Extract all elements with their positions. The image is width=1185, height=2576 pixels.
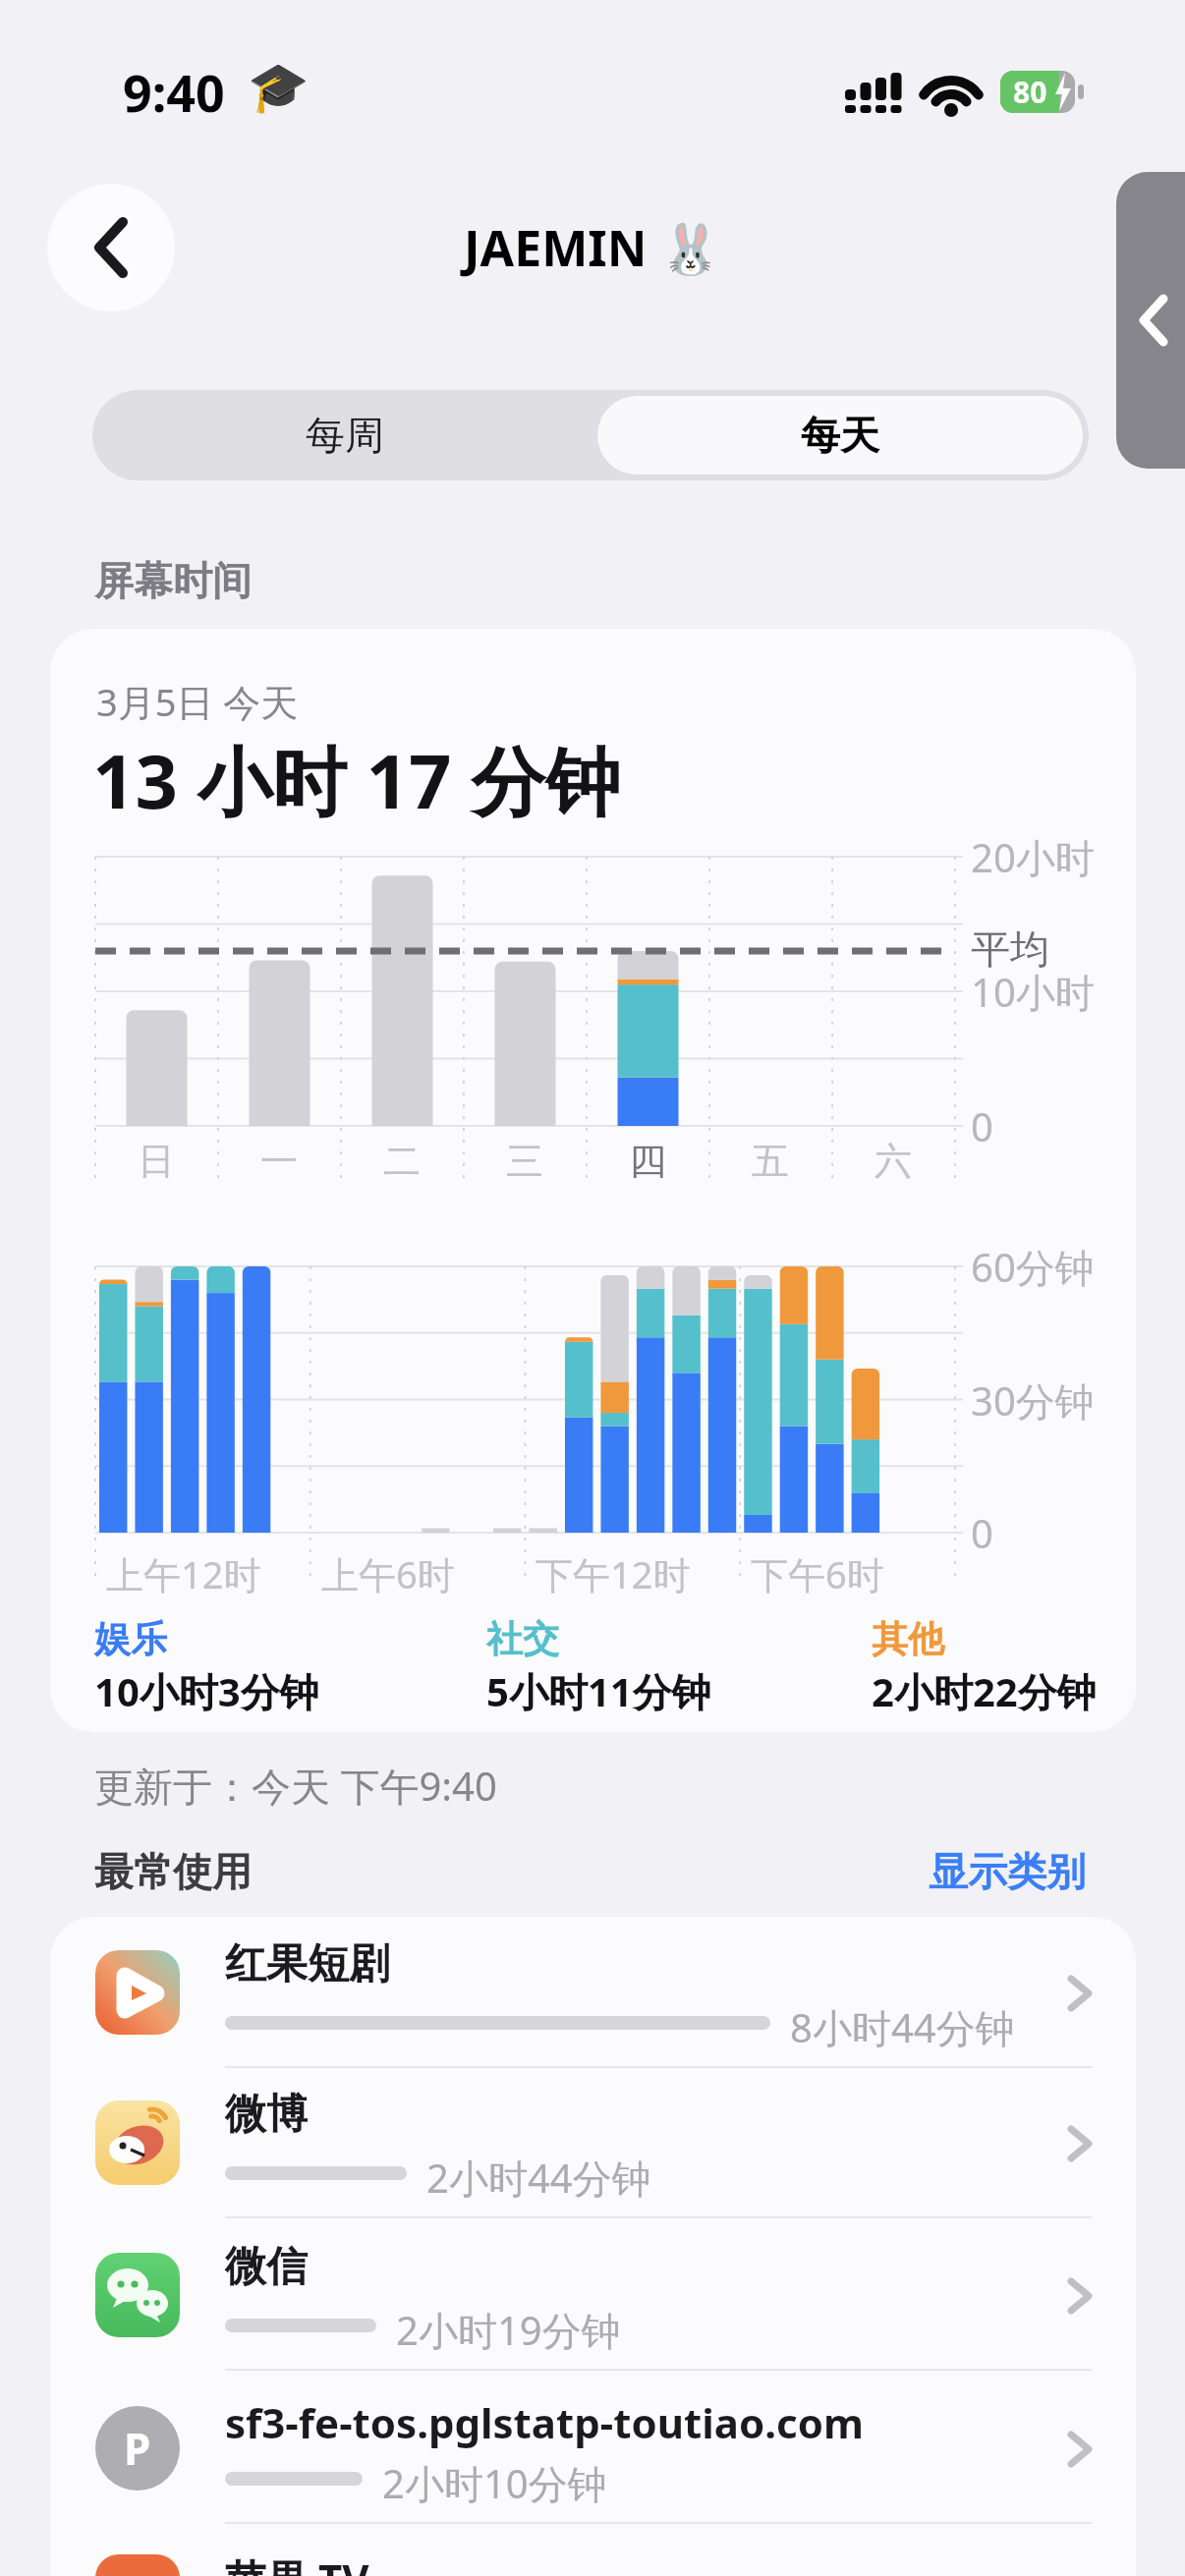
- staticText: 平均: [971, 924, 1049, 974]
- staticText: 二: [383, 1138, 421, 1185]
- staticText: 微博: [225, 2089, 308, 2141]
- button[interactable]: [50, 2067, 1136, 2217]
- staticText: 一: [260, 1138, 298, 1185]
- staticText: 其他: [872, 1616, 944, 1662]
- staticText: 更新于：今天 下午9:40: [94, 1759, 497, 1813]
- staticText: 0: [971, 1506, 993, 1559]
- staticText: 80: [1013, 72, 1047, 112]
- staticText: 2小时19分钟: [396, 2303, 621, 2357]
- staticText: 屏幕时间: [94, 556, 252, 605]
- staticText: 三: [506, 1138, 543, 1185]
- staticText: P: [124, 2419, 151, 2478]
- staticText: 四: [629, 1138, 666, 1185]
- button[interactable]: [50, 2219, 1136, 2370]
- staticText: sf3-fe-tos.pglstatp-toutiao.com: [225, 2394, 864, 2450]
- staticText: 3月5日 今天: [96, 676, 299, 727]
- staticText: 娱乐: [94, 1616, 167, 1662]
- staticText: 下午12时: [536, 1548, 691, 1599]
- staticText: 苹果 TV: [225, 2550, 369, 2576]
- staticText: 下午6时: [751, 1548, 884, 1599]
- staticText: 社交: [486, 1616, 559, 1662]
- staticText: 显示类别: [929, 1847, 1086, 1896]
- button[interactable]: [50, 2373, 1136, 2523]
- button[interactable]: [50, 2526, 1136, 2576]
- staticText: 13 小时 17 分钟: [92, 729, 621, 831]
- button[interactable]: [50, 1917, 1136, 2067]
- button[interactable]: 显示类别: [929, 1847, 1086, 1896]
- staticText: 10小时: [971, 965, 1095, 1019]
- staticText: 20小时: [971, 830, 1095, 884]
- staticText: 六: [875, 1138, 912, 1185]
- staticText: 上午6时: [321, 1548, 455, 1599]
- staticText: 9:40: [123, 57, 225, 127]
- staticText: 日: [138, 1138, 175, 1185]
- staticText: 10小时3分钟: [94, 1664, 319, 1718]
- staticText: 30分钟: [971, 1373, 1095, 1428]
- staticText: 微信: [225, 2241, 308, 2293]
- staticText: JAEMIN 🐰: [464, 214, 721, 281]
- staticText: 0: [971, 1099, 993, 1152]
- staticText: 5小时11分钟: [486, 1664, 711, 1718]
- staticText: 2小时22分钟: [872, 1664, 1097, 1718]
- staticText: 60分钟: [971, 1240, 1095, 1294]
- staticText: 上午12时: [106, 1548, 261, 1599]
- staticText: 2小时44分钟: [426, 2151, 651, 2205]
- button[interactable]: 每周: [92, 390, 597, 480]
- staticText: 每周: [306, 411, 384, 460]
- button[interactable]: [597, 396, 1083, 475]
- button[interactable]: [1116, 172, 1185, 469]
- staticText: 五: [752, 1138, 789, 1185]
- staticText: 2小时10分钟: [382, 2456, 607, 2510]
- staticText: 最常使用: [94, 1847, 252, 1896]
- button[interactable]: [47, 184, 175, 311]
- staticText: 每天: [801, 411, 879, 460]
- staticText: 红果短剧: [225, 1938, 390, 1990]
- staticText: 🎓: [248, 59, 310, 117]
- staticText: 8小时44分钟: [790, 2000, 1015, 2054]
